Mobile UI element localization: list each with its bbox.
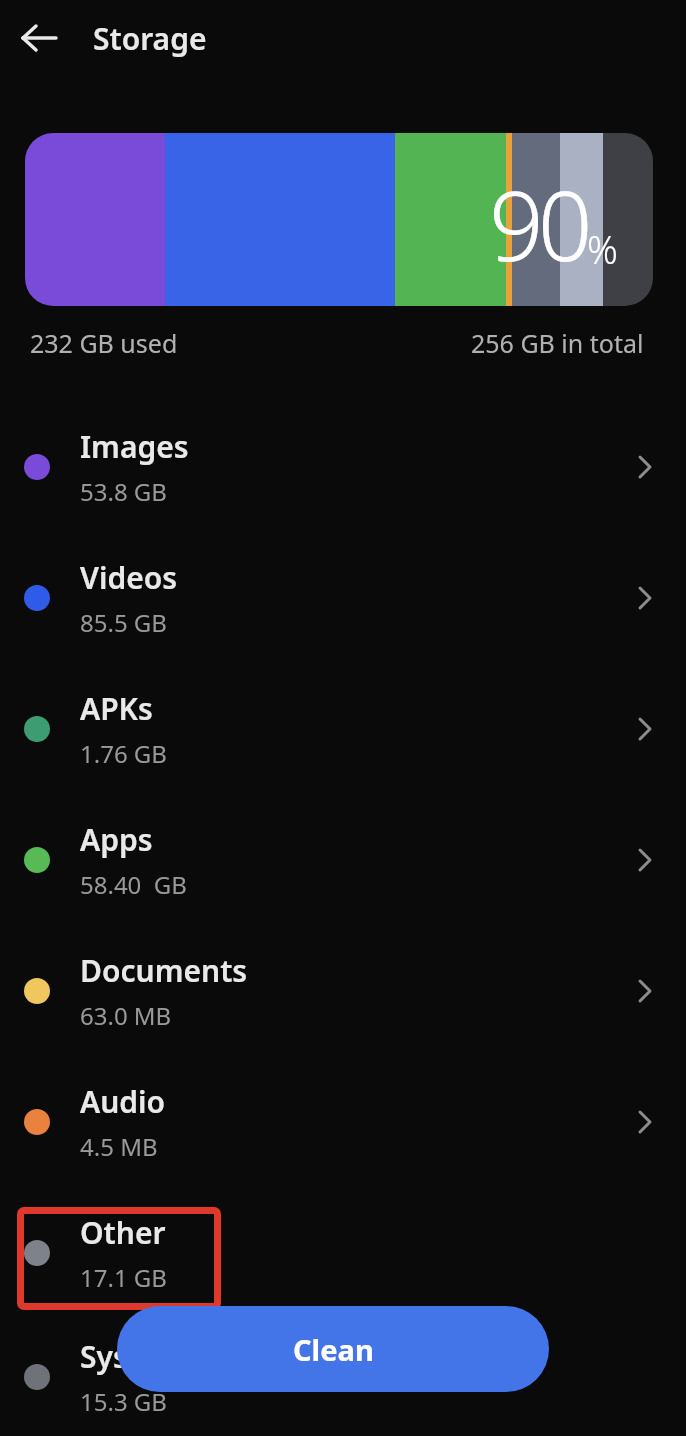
- button[interactable]: Clean: [117, 1306, 549, 1392]
- button[interactable]: [22, 23, 58, 53]
- button[interactable]: Apps: [0, 794, 686, 925]
- button[interactable]: Documents: [0, 925, 686, 1056]
- staticText: Videos: [80, 557, 178, 598]
- staticText: 90: [489, 158, 587, 289]
- staticText: 232 GB used: [30, 326, 178, 360]
- staticText: APKs: [80, 688, 153, 729]
- button[interactable]: Audio: [0, 1056, 686, 1187]
- staticText: 63.0 MB: [80, 999, 172, 1032]
- staticText: Images: [80, 426, 189, 467]
- staticText: %: [587, 223, 618, 275]
- staticText: 256 GB in total: [471, 326, 644, 360]
- staticText: Apps: [80, 819, 153, 860]
- button[interactable]: Videos: [0, 532, 686, 663]
- staticText: 4.5 MB: [80, 1130, 158, 1163]
- staticText: 58.40 GB: [80, 868, 187, 901]
- staticText: 17.1 GB: [80, 1261, 167, 1294]
- staticText: Clean: [293, 1330, 374, 1369]
- staticText: Other: [80, 1212, 166, 1253]
- button[interactable]: Other: [0, 1187, 686, 1318]
- staticText: Audio: [80, 1081, 166, 1122]
- button[interactable]: APKs: [0, 663, 686, 794]
- button[interactable]: System: [0, 1318, 686, 1436]
- staticText: Storage: [93, 18, 207, 59]
- staticText: 15.3 GB: [80, 1385, 167, 1418]
- button[interactable]: Images: [0, 401, 686, 532]
- staticText: System: [80, 1336, 187, 1377]
- staticText: 85.5 GB: [80, 606, 167, 639]
- staticText: 53.8 GB: [80, 475, 167, 508]
- staticText: Documents: [80, 950, 248, 991]
- staticText: 1.76 GB: [80, 737, 167, 770]
